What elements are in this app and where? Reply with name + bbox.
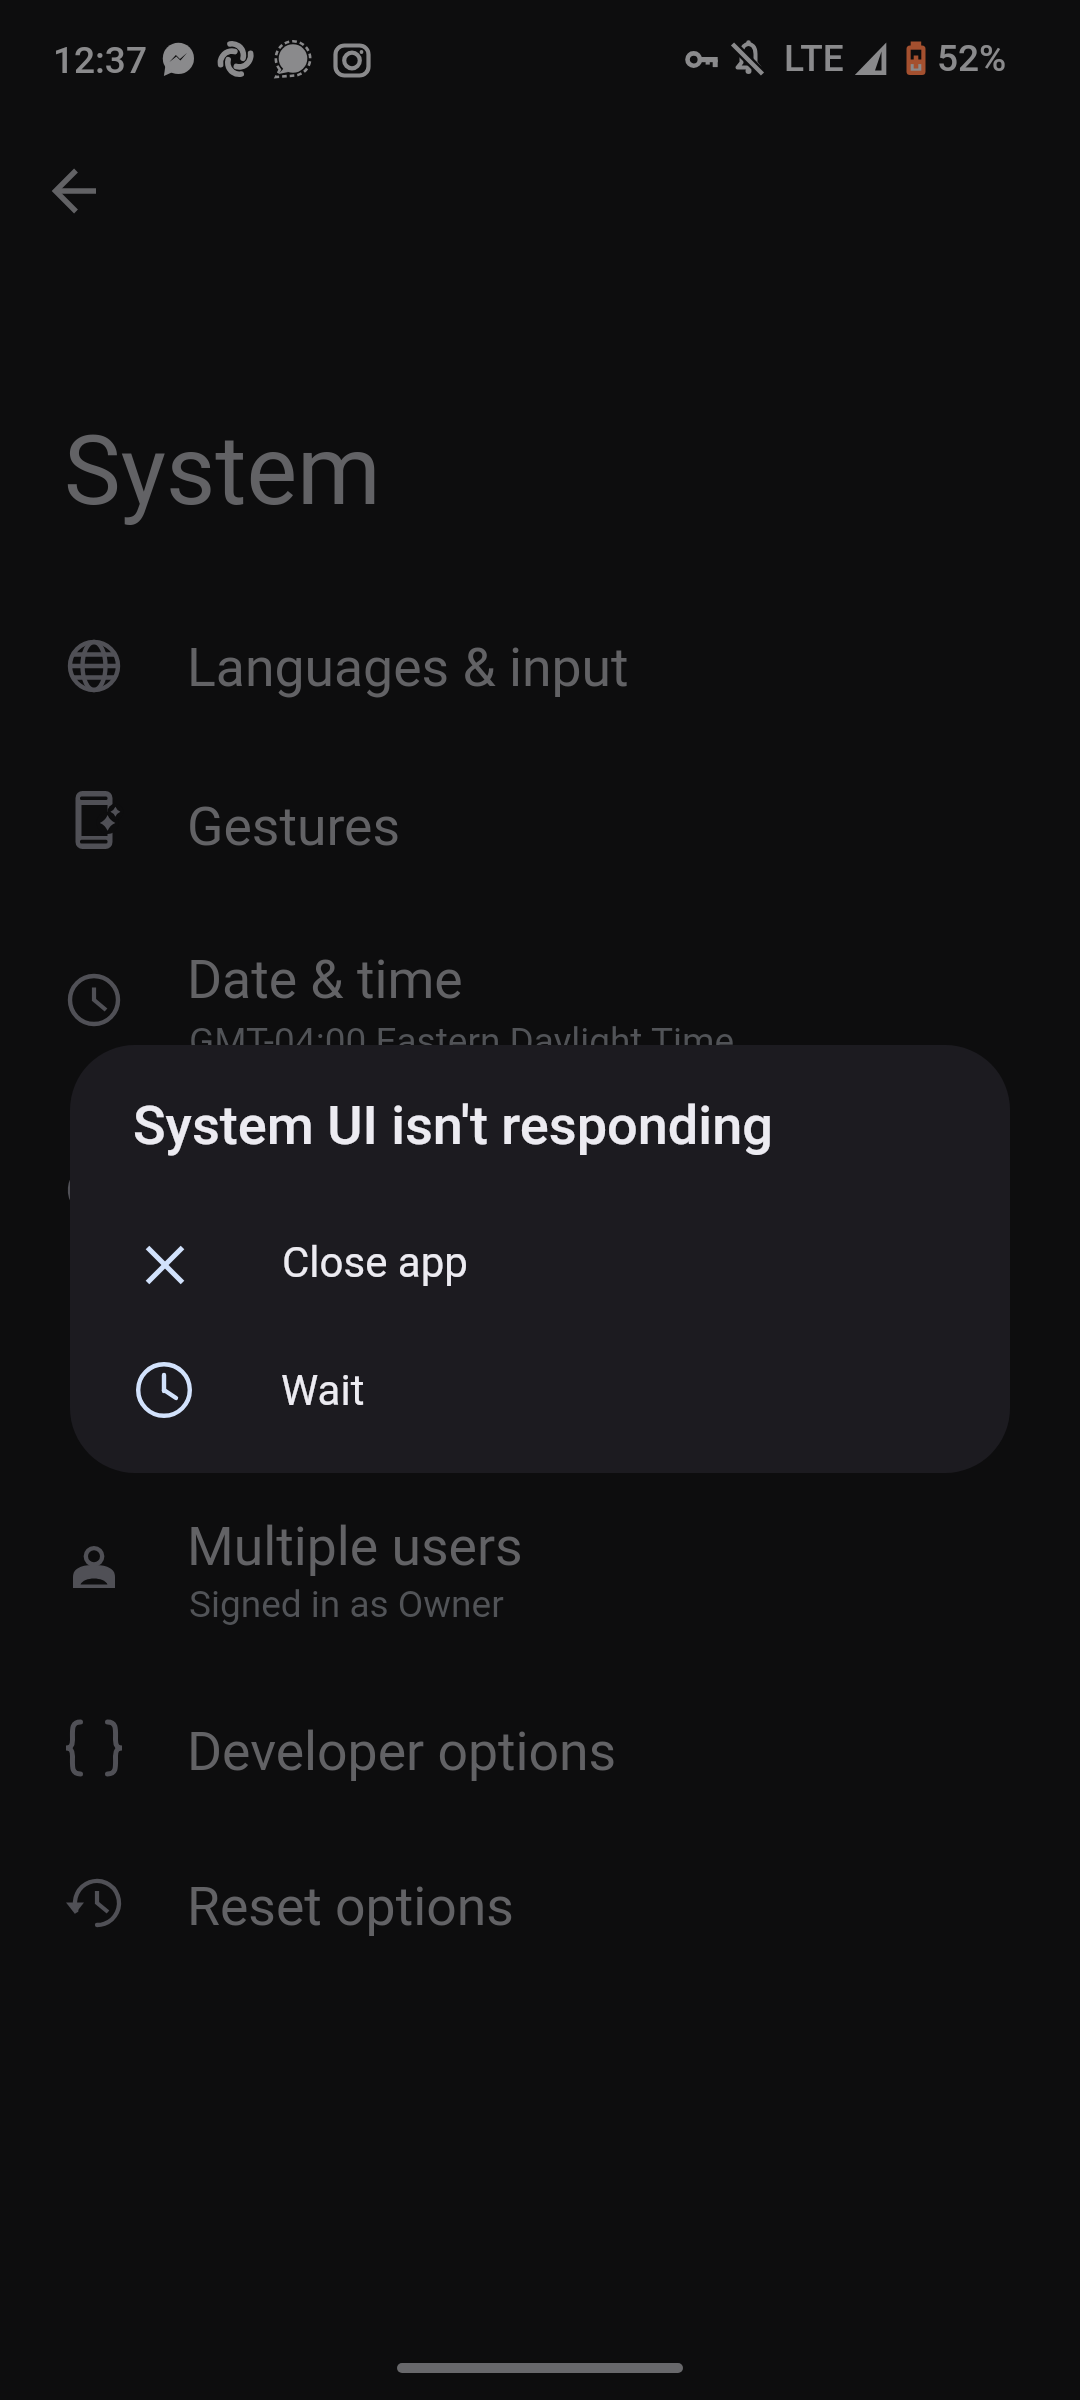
- button[interactable]: Date & time: [0, 922, 1080, 1078]
- staticText: Gestures: [187, 795, 401, 858]
- button[interactable]: Languages & input: [0, 588, 1080, 744]
- staticText: System UI isn't responding: [133, 1094, 773, 1157]
- button[interactable]: Reset options: [0, 1825, 1080, 1981]
- staticText: Reset options: [187, 1875, 514, 1938]
- staticText: Close app: [282, 1238, 468, 1287]
- staticText: GMT-04:00 Eastern Daylight Time: [189, 1020, 735, 1063]
- staticText: System update: [187, 1356, 543, 1419]
- staticText: Developer options: [187, 1720, 617, 1783]
- button[interactable]: Developer options: [0, 1670, 1080, 1826]
- staticText: 12:37: [53, 39, 147, 82]
- staticText: Signed in as Owner: [189, 1583, 504, 1626]
- button[interactable]: System update: [0, 1317, 1080, 1473]
- button[interactable]: Close app: [70, 1232, 1010, 1350]
- button[interactable]: Gestures: [0, 742, 1080, 898]
- button[interactable]: Backup: [0, 1112, 1080, 1268]
- staticText: Multiple users: [187, 1515, 523, 1578]
- staticText: Date & time: [187, 948, 463, 1011]
- staticText: Languages & input: [187, 636, 629, 699]
- staticText: Wait: [281, 1366, 365, 1415]
- staticText: LTE: [784, 37, 844, 80]
- button[interactable]: Multiple users: [0, 1485, 1080, 1641]
- staticText: System: [64, 415, 381, 527]
- staticText: 52%: [937, 37, 1007, 80]
- button[interactable]: Wait: [70, 1360, 1010, 1473]
- button[interactable]: Back: [38, 157, 106, 225]
